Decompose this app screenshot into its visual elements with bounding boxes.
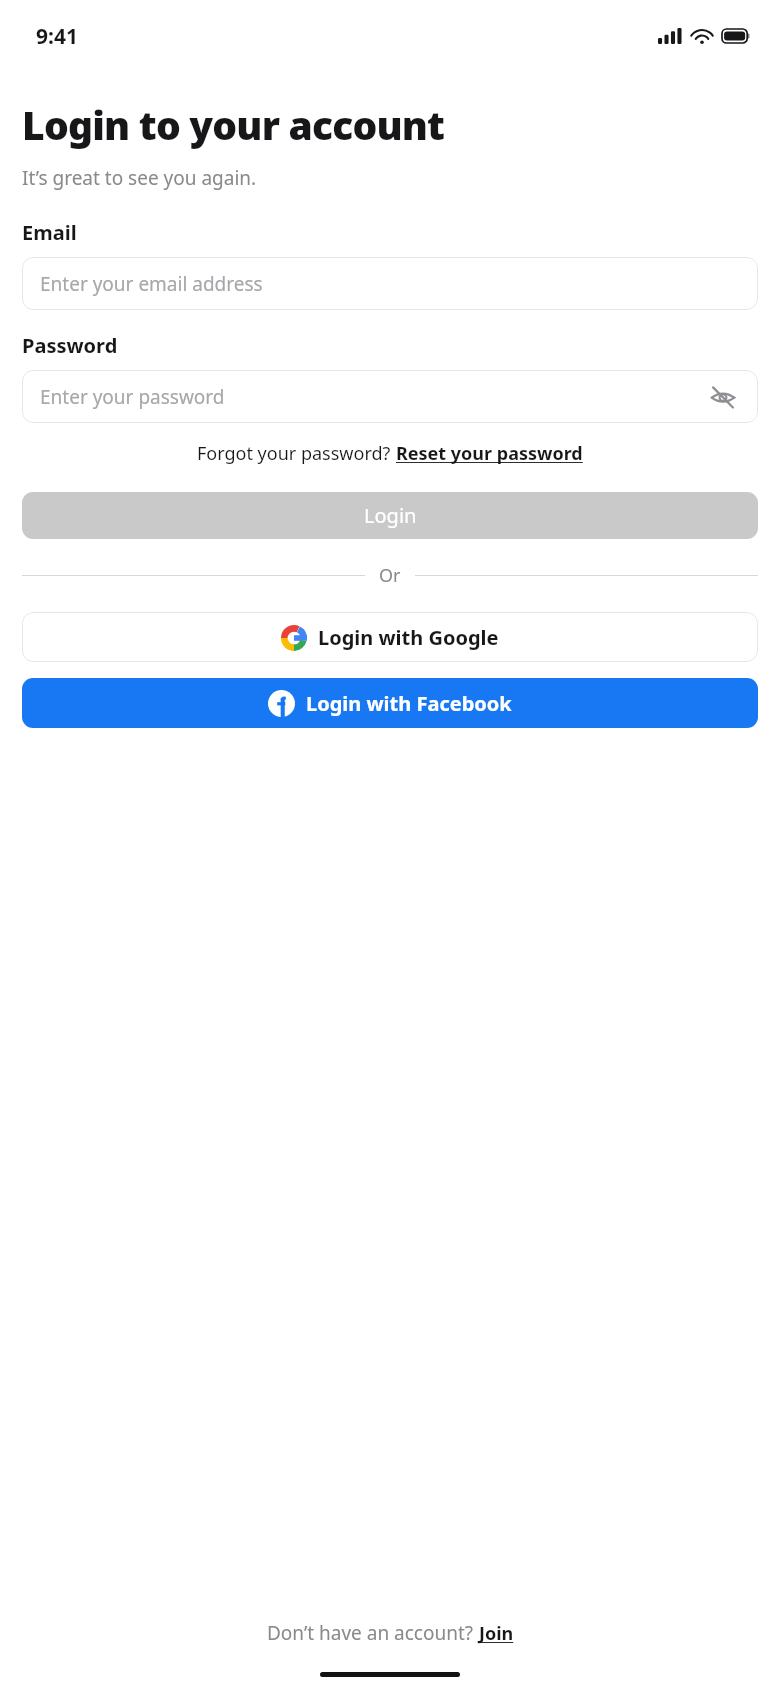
button[interactable]: Enter your email address — [22, 257, 758, 310]
button[interactable]: Login with Google — [22, 612, 758, 662]
button[interactable]: Show password — [706, 380, 740, 414]
staticText: Join — [479, 1621, 514, 1646]
button[interactable]: Login — [22, 492, 758, 539]
staticText: 9:41 — [36, 22, 78, 51]
staticText: Forgot your password? — [197, 441, 396, 466]
button[interactable]: Reset your password — [396, 441, 583, 466]
staticText: Don’t have an account? — [267, 1620, 479, 1646]
staticText: Enter your password — [40, 384, 706, 410]
staticText: Or — [379, 563, 401, 588]
staticText: Password — [22, 332, 118, 359]
button[interactable]: Enter your password — [22, 370, 758, 423]
button[interactable]: Login with Facebook — [22, 678, 758, 728]
button[interactable]: Join — [479, 1621, 514, 1646]
staticText: Login with Facebook — [306, 690, 512, 717]
staticText: Login to your account — [22, 98, 445, 151]
staticText: Enter your email address — [40, 271, 740, 297]
staticText: Login with Google — [318, 624, 499, 651]
staticText: Email — [22, 219, 77, 246]
staticText: Login — [364, 502, 417, 529]
staticText: Reset your password — [396, 441, 583, 466]
staticText: It’s great to see you again. — [22, 165, 257, 191]
